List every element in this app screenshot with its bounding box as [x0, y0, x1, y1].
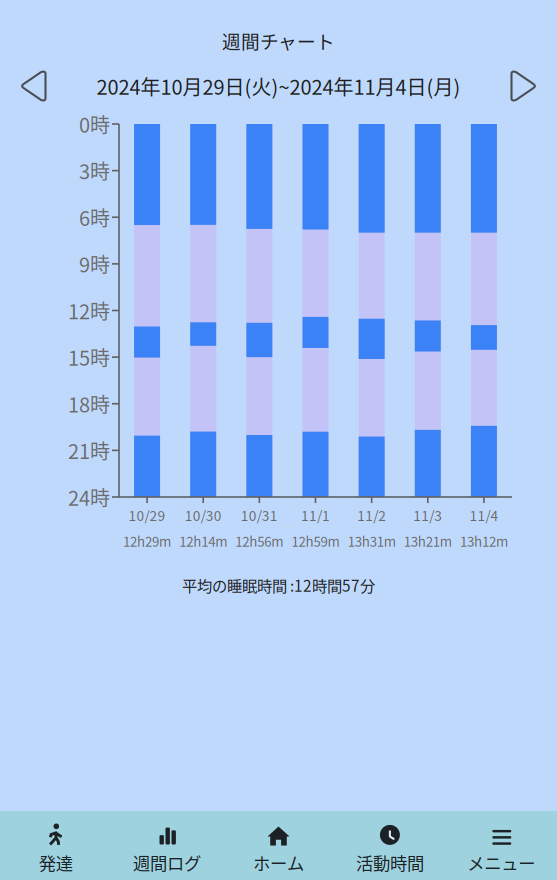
staticText: ホーム — [253, 850, 304, 875]
staticText: 平均の睡眠時間 :12時間57分 — [182, 574, 375, 596]
button[interactable]: 発達 — [0, 818, 111, 880]
staticText: 11/4 — [469, 505, 498, 525]
staticText: 12h14m — [179, 531, 227, 551]
staticText: 10/31 — [241, 505, 278, 525]
staticText: 12時 — [68, 296, 110, 325]
staticText: 13h21m — [404, 531, 452, 551]
button[interactable]: Previous week — [16, 68, 50, 104]
staticText: 活動時間 — [356, 850, 424, 875]
button[interactable]: Next week — [507, 68, 541, 104]
button[interactable]: 活動時間 — [334, 818, 446, 880]
button[interactable]: 週間ログ — [111, 818, 223, 880]
staticText: 3時 — [79, 156, 110, 185]
staticText: 発達 — [39, 850, 73, 875]
staticText: 18時 — [68, 389, 110, 418]
staticText: 週間ログ — [133, 850, 201, 875]
staticText: 週間チャート — [222, 27, 335, 54]
staticText: 11/1 — [301, 505, 330, 525]
button[interactable]: ホーム — [223, 818, 334, 880]
staticText: 12h59m — [291, 531, 339, 551]
staticText: 13h12m — [460, 531, 508, 551]
staticText: 15時 — [68, 343, 110, 372]
staticText: 10/30 — [185, 505, 222, 525]
staticText: 12h56m — [235, 531, 283, 551]
staticText: 2024年10月29日(火)~2024年11月4日(月) — [96, 71, 460, 100]
staticText: 10/29 — [129, 505, 166, 525]
staticText: 21時 — [68, 436, 110, 465]
staticText: 11/3 — [413, 505, 442, 525]
staticText: 13h31m — [348, 531, 396, 551]
staticText: 12h29m — [123, 531, 171, 551]
staticText: メニュー — [467, 850, 535, 875]
staticText: 24時 — [68, 482, 110, 511]
staticText: 11/2 — [357, 505, 386, 525]
staticText: 0時 — [79, 109, 110, 138]
staticText: 6時 — [79, 203, 110, 232]
button[interactable]: メニュー — [446, 818, 557, 880]
staticText: 9時 — [79, 249, 110, 278]
